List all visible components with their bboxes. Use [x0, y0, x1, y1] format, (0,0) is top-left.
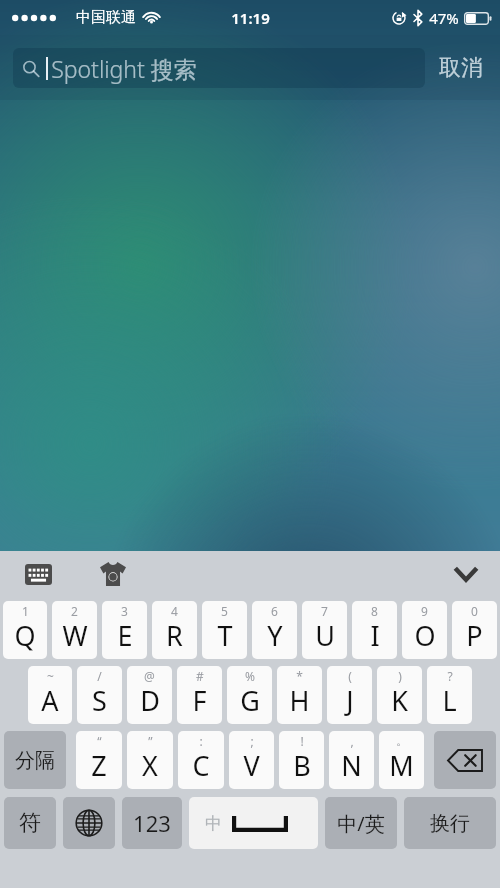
staticText: W [62, 617, 88, 654]
staticText: K [391, 682, 408, 719]
button[interactable]: 8 [352, 601, 397, 659]
staticText: M [389, 747, 414, 784]
button[interactable]: 0 [452, 601, 497, 659]
staticText: 7 [321, 603, 328, 619]
staticText: 中/英 [337, 810, 385, 837]
button[interactable]: Delete [434, 731, 496, 789]
staticText: * [296, 668, 303, 684]
button[interactable]: ! [279, 731, 324, 789]
button[interactable]: 1 [3, 601, 47, 659]
staticText: N [341, 747, 362, 784]
staticText: / [97, 668, 102, 684]
staticText: 5 [221, 603, 228, 619]
staticText: 取消 [439, 54, 483, 82]
button[interactable]: Hide keyboard [446, 554, 486, 594]
staticText: Y [267, 617, 283, 654]
staticText: ” [148, 733, 153, 749]
staticText: 0 [471, 603, 478, 619]
button[interactable]: # [177, 666, 222, 724]
button[interactable]: ~ [28, 666, 72, 724]
staticText: V [243, 747, 260, 784]
button[interactable]: Keyboard [21, 557, 55, 591]
staticText: 4 [171, 603, 178, 619]
staticText: 。 [396, 733, 408, 748]
button[interactable]: : [178, 731, 224, 789]
staticText: 9 [421, 603, 428, 619]
staticText: @ [144, 668, 155, 684]
button[interactable]: 。 [379, 731, 424, 789]
button[interactable]: 5 [202, 601, 247, 659]
staticText: 中 [205, 813, 222, 834]
button[interactable]: Change language [63, 797, 115, 849]
staticText: B [293, 747, 311, 784]
button[interactable]: 符 [4, 797, 56, 849]
button[interactable]: ? [427, 666, 472, 724]
staticText: X [142, 747, 158, 784]
staticText: D [140, 682, 160, 719]
staticText: G [240, 682, 260, 719]
staticText: J [346, 682, 354, 719]
staticText: 符 [19, 809, 41, 837]
button[interactable]: ) [377, 666, 422, 724]
button[interactable]: * [277, 666, 322, 724]
staticText: T [217, 617, 233, 654]
staticText: ? [447, 668, 453, 684]
staticText: Q [14, 617, 36, 654]
button[interactable]: ( [327, 666, 372, 724]
staticText: O [414, 617, 436, 654]
button[interactable]: @ [127, 666, 172, 724]
button[interactable]: Space [189, 797, 318, 849]
button[interactable]: 换行 [404, 797, 496, 849]
button[interactable]: 2 [52, 601, 97, 659]
staticText: ( [348, 668, 352, 684]
staticText: 1 [22, 603, 29, 619]
button[interactable]: 7 [302, 601, 347, 659]
staticText: Z [91, 747, 107, 784]
staticText: : [199, 733, 203, 749]
button[interactable]: 4 [152, 601, 197, 659]
staticText: 换行 [430, 811, 470, 836]
staticText: “ [97, 733, 102, 749]
staticText: I [370, 617, 380, 654]
button[interactable]: % [227, 666, 272, 724]
staticText: 中国联通 [76, 8, 136, 27]
staticText: 分隔 [15, 748, 55, 773]
staticText: ! [300, 733, 304, 749]
staticText: R [166, 617, 183, 654]
staticText: ) [398, 668, 402, 684]
staticText: U [315, 617, 335, 654]
button[interactable]: 取消 [435, 48, 487, 88]
staticText: , [350, 733, 354, 749]
button[interactable]: 6 [252, 601, 297, 659]
button[interactable]: Spotlight 搜索 [13, 48, 425, 88]
button[interactable]: / [77, 666, 122, 724]
staticText: 11:19 [231, 8, 270, 28]
button[interactable]: 123 [122, 797, 182, 849]
button[interactable]: Theme [96, 557, 130, 591]
button[interactable]: , [329, 731, 374, 789]
staticText: E [117, 617, 133, 654]
staticText: ~ [47, 668, 54, 684]
staticText: H [289, 682, 310, 719]
button[interactable]: “ [76, 731, 122, 789]
staticText: % [245, 668, 255, 684]
staticText: ; [250, 733, 254, 749]
button[interactable]: 分隔 [4, 731, 66, 789]
staticText: L [442, 682, 457, 719]
button[interactable]: 中/英 [325, 797, 397, 849]
staticText: F [192, 682, 207, 719]
staticText: 47% [429, 8, 459, 28]
staticText: C [192, 747, 210, 784]
staticText: 8 [371, 603, 378, 619]
button[interactable]: 9 [402, 601, 447, 659]
button[interactable]: ; [229, 731, 274, 789]
staticText: Spotlight 搜索 [51, 53, 197, 84]
staticText: S [92, 682, 107, 719]
staticText: A [41, 682, 59, 719]
button[interactable]: ” [127, 731, 173, 789]
staticText: P [466, 617, 483, 654]
staticText: 6 [271, 603, 278, 619]
staticText: 123 [133, 808, 171, 838]
button[interactable]: 3 [102, 601, 147, 659]
staticText: 3 [121, 603, 128, 619]
